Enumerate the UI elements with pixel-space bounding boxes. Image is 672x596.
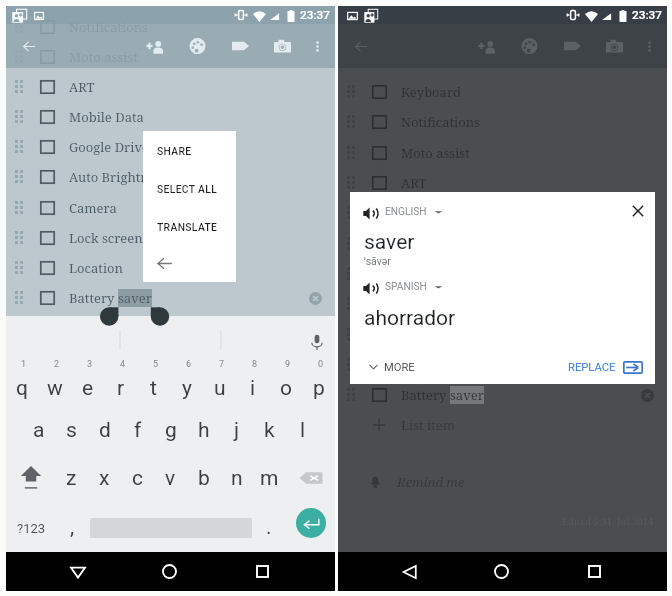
button[interactable]: Add collaborator (465, 24, 509, 68)
button[interactable]: ART (338, 168, 667, 197)
button[interactable]: 5 (137, 358, 170, 406)
button[interactable]: z (55, 454, 88, 502)
button[interactable]: Notifications (338, 107, 667, 136)
button[interactable]: Battery (338, 380, 667, 409)
staticText: Notifications (69, 18, 148, 36)
button[interactable]: Moto assist (6, 42, 335, 71)
staticText: y (182, 376, 192, 401)
button[interactable]: Play Spanish pronunciation (356, 274, 384, 302)
button[interactable]: Mobile Data (6, 102, 335, 131)
button[interactable]: Change colour (175, 24, 219, 68)
button[interactable]: , (55, 504, 89, 552)
button[interactable]: Recents (246, 555, 279, 588)
button[interactable]: . (252, 504, 285, 552)
button[interactable]: a (22, 406, 55, 454)
button[interactable]: MORE (369, 353, 415, 381)
button[interactable]: Back (143, 245, 236, 281)
button[interactable]: x (88, 454, 121, 502)
button[interactable]: Back (339, 24, 383, 68)
button[interactable]: ENGLISH (385, 202, 443, 222)
button[interactable]: Label (218, 24, 262, 68)
button[interactable]: Recents (578, 555, 611, 588)
button[interactable]: ART (6, 72, 335, 101)
button[interactable]: SELECT ALL (143, 171, 236, 207)
button[interactable]: 3 (71, 358, 104, 406)
staticText: List item (401, 416, 456, 434)
button[interactable]: Google Drive (6, 132, 335, 161)
button[interactable]: 2 (38, 358, 71, 406)
button[interactable]: Backspace (286, 454, 335, 502)
button[interactable]: Notifications (6, 12, 335, 41)
button[interactable]: m (253, 454, 286, 502)
button[interactable]: Keyboard (338, 77, 667, 106)
button[interactable]: n (220, 454, 253, 502)
button[interactable]: Lock screen (338, 320, 667, 349)
button[interactable]: Google Drive (338, 229, 667, 258)
button[interactable]: c (121, 454, 154, 502)
button[interactable]: Add collaborator (133, 24, 177, 68)
button[interactable]: Camera (260, 24, 304, 68)
button[interactable]: Back (393, 555, 426, 588)
staticText: Battery (69, 289, 118, 307)
button[interactable]: b (187, 454, 220, 502)
button[interactable]: Play English pronunciation (356, 199, 384, 227)
button[interactable]: Camera (6, 193, 335, 222)
button[interactable]: 1 (6, 358, 38, 406)
button[interactable]: d (88, 406, 121, 454)
button[interactable]: Label (550, 24, 594, 68)
button[interactable]: 0 (302, 358, 335, 406)
button[interactable]: 6 (170, 358, 203, 406)
button[interactable]: TRANSLATE (143, 209, 236, 245)
button[interactable]: l (286, 406, 319, 454)
button[interactable]: j (220, 406, 253, 454)
button[interactable]: Location (6, 253, 335, 282)
staticText: 2 (54, 359, 60, 370)
staticText: w (47, 376, 63, 401)
button[interactable]: s (55, 406, 88, 454)
button[interactable]: Home (153, 555, 186, 588)
staticText: SPANISH (385, 281, 427, 293)
button[interactable]: h (187, 406, 220, 454)
button[interactable]: Auto Brightness (338, 259, 667, 288)
button[interactable]: Clear (302, 285, 328, 311)
button[interactable]: More options (633, 30, 665, 62)
button[interactable]: Home (485, 555, 518, 588)
button[interactable]: Auto Brightness (6, 162, 335, 191)
button[interactable]: 4 (104, 358, 137, 406)
staticText: 23:37 (300, 8, 330, 22)
button[interactable]: Back (7, 24, 51, 68)
button[interactable]: g (154, 406, 187, 454)
button[interactable]: More options (301, 30, 333, 62)
staticText: 5 (153, 359, 159, 370)
button[interactable]: Mobile Data (338, 198, 667, 227)
button[interactable]: f (121, 406, 154, 454)
staticText: REPLACE (568, 361, 616, 374)
button[interactable]: 7 (203, 358, 236, 406)
button[interactable]: Battery (6, 283, 335, 312)
button[interactable]: Change colour (507, 24, 551, 68)
button[interactable]: Camera (592, 24, 636, 68)
button[interactable]: 8 (236, 358, 269, 406)
button[interactable]: v (154, 454, 187, 502)
button[interactable]: Shift (6, 454, 55, 502)
button[interactable]: k (253, 406, 286, 454)
button[interactable]: ?123 (10, 504, 52, 552)
button[interactable]: Clear (634, 382, 660, 408)
button[interactable]: SPANISH (385, 277, 443, 297)
button[interactable]: Enter (296, 508, 326, 538)
button[interactable]: REPLACE (568, 353, 643, 381)
button[interactable]: Close (622, 195, 654, 227)
button[interactable]: Moto assist (338, 138, 667, 167)
button[interactable]: SHARE (143, 133, 236, 169)
button[interactable]: Lock screen (6, 223, 335, 252)
button[interactable]: Back (61, 555, 94, 588)
staticText: s (66, 418, 77, 443)
button[interactable]: 9 (269, 358, 302, 406)
button[interactable]: Location (338, 350, 667, 379)
button[interactable]: Camera (338, 289, 667, 318)
button[interactable]: Space (90, 504, 252, 552)
button[interactable]: Voice input (303, 328, 331, 356)
